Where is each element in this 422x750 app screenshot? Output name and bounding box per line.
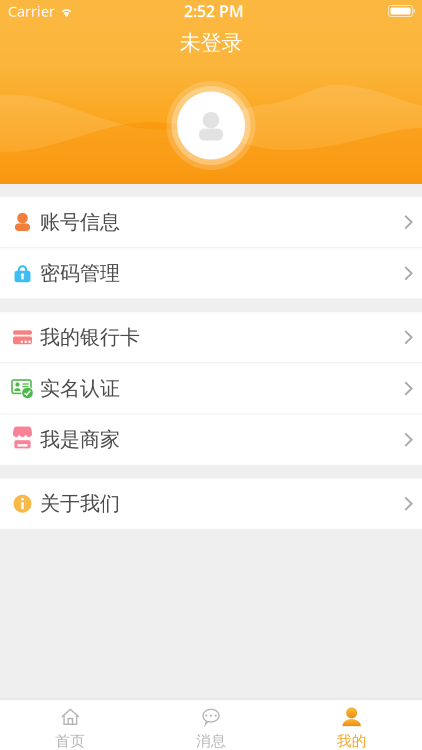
button[interactable]: 关于我们: [0, 479, 422, 529]
button[interactable]: 我的银行卡: [0, 312, 422, 362]
staticText: Carrier: [8, 1, 55, 21]
staticText: 密码管理: [40, 261, 120, 286]
button[interactable]: 账号信息: [0, 197, 422, 247]
button[interactable]: 我的: [281, 700, 422, 750]
staticText: 我的: [337, 732, 367, 750]
staticText: 我是商家: [40, 427, 120, 452]
staticText: 实名认证: [40, 376, 120, 401]
staticText: 账号信息: [40, 210, 120, 234]
staticText: 消息: [196, 732, 226, 750]
button[interactable]: 我是商家: [0, 415, 422, 465]
button[interactable]: 密码管理: [0, 248, 422, 298]
staticText: 首页: [55, 732, 85, 750]
staticText: 关于我们: [40, 491, 120, 516]
staticText: 2:52 PM: [184, 0, 244, 22]
button[interactable]: 消息: [141, 700, 281, 750]
staticText: 未登录: [179, 30, 242, 56]
button[interactable]: 实名认证: [0, 363, 422, 414]
staticText: 我的银行卡: [40, 325, 140, 350]
button[interactable]: 首页: [0, 700, 141, 750]
